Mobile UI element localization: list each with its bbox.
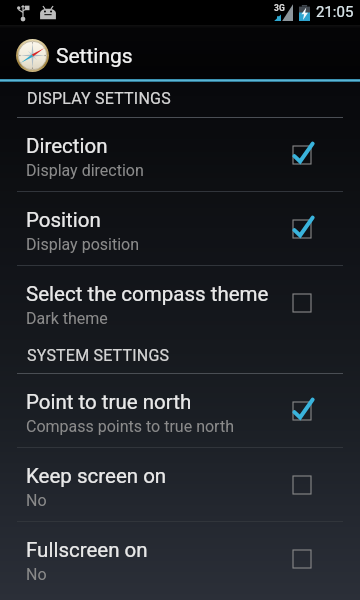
staticText: Settings (56, 44, 133, 69)
button[interactable]: Direction (0, 118, 360, 191)
button[interactable]: Keep screen on (0, 448, 360, 521)
button[interactable]: Fullscreen on (0, 522, 360, 595)
staticText: Dark theme (26, 309, 108, 328)
staticText: Position (26, 208, 101, 232)
other: Checked (285, 138, 319, 172)
button[interactable]: Position (0, 192, 360, 265)
staticText: Display position (26, 235, 139, 254)
staticText: DISPLAY SETTINGS (27, 89, 171, 108)
other: Unchecked (285, 468, 319, 502)
staticText: No (26, 491, 47, 510)
staticText: Point to true north (26, 390, 192, 414)
staticText: SYSTEM SETTINGS (27, 346, 170, 365)
button[interactable]: Point to true north (0, 374, 360, 447)
staticText: Compass points to true north (26, 417, 234, 436)
other: Checked (285, 212, 319, 246)
staticText: 3G (274, 3, 285, 13)
other: Unchecked (285, 542, 319, 576)
other: Checked (285, 394, 319, 428)
other: Unchecked (285, 286, 319, 320)
staticText: 21:05 (316, 3, 354, 21)
staticText: Keep screen on (26, 464, 167, 488)
staticText: Select the compass theme (26, 282, 269, 306)
staticText: No (26, 565, 47, 584)
button[interactable]: Select the compass theme (0, 266, 360, 339)
staticText: Fullscreen on (26, 538, 148, 562)
staticText: Direction (26, 134, 108, 158)
staticText: Display direction (26, 161, 144, 180)
